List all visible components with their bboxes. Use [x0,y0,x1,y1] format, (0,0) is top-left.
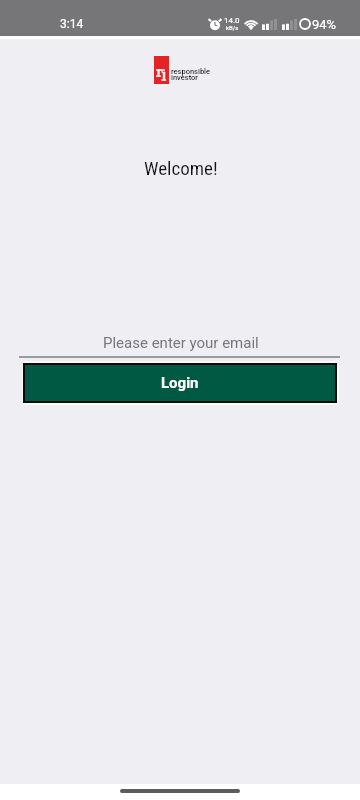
button[interactable]: Please enter your email [21,334,341,358]
staticText: 94% [312,17,337,32]
staticText: 3:14 [60,17,84,31]
staticText: Welcome! [144,157,218,179]
button[interactable]: Login [25,365,335,401]
staticText: Login [161,374,199,392]
staticText: responsible [171,67,211,76]
staticText: Please enter your email [103,334,259,352]
staticText: 14.0 [224,16,240,25]
other: Home gesture bar [120,789,240,793]
staticText: kB/s [226,24,239,31]
staticText: investor [171,73,198,82]
